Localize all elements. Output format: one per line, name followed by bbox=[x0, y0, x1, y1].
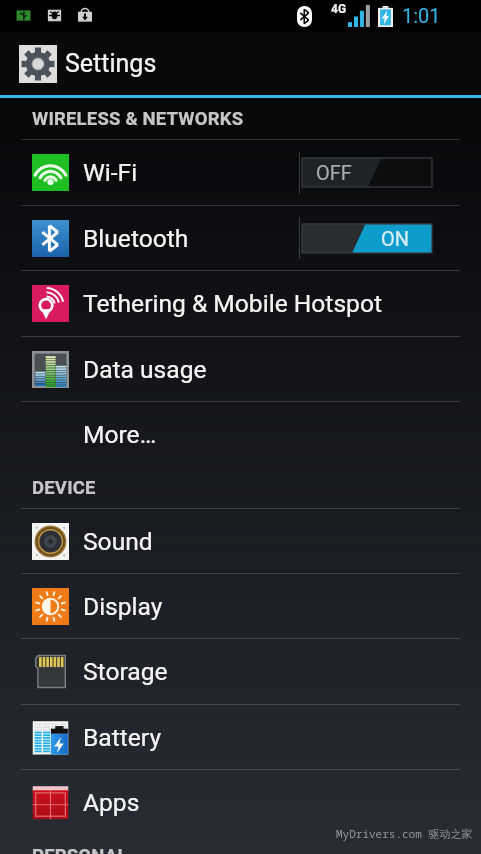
staticText: Settings bbox=[65, 49, 157, 78]
staticText: OFF bbox=[316, 161, 352, 184]
staticText: 4G bbox=[331, 2, 347, 16]
staticText: PERSONAL bbox=[32, 845, 128, 854]
staticText: Battery bbox=[83, 723, 162, 752]
button[interactable]: More… bbox=[0, 402, 481, 467]
button[interactable]: Wi-Fi bbox=[0, 140, 481, 205]
staticText: Tethering & Mobile Hotspot bbox=[83, 289, 382, 318]
button[interactable]: Storage bbox=[0, 639, 481, 704]
staticText: DEVICE bbox=[32, 477, 96, 499]
button[interactable]: Tethering & Mobile Hotspot bbox=[0, 271, 481, 336]
button[interactable]: Switch off bbox=[302, 158, 432, 187]
button[interactable]: Data usage bbox=[0, 337, 481, 401]
other: Settings bbox=[19, 45, 57, 83]
button[interactable]: Apps bbox=[0, 770, 481, 835]
button[interactable]: Sound bbox=[0, 509, 481, 573]
staticText: Wi-Fi bbox=[83, 158, 138, 187]
staticText: Display bbox=[83, 592, 163, 621]
staticText: Bluetooth bbox=[83, 224, 189, 253]
button[interactable]: Bluetooth bbox=[0, 206, 481, 270]
staticText: Storage bbox=[83, 657, 168, 686]
button[interactable]: Battery bbox=[0, 705, 481, 769]
staticText: MyDrivers.com 驱动之家 bbox=[336, 826, 473, 841]
button[interactable]: Switch on bbox=[302, 224, 432, 253]
staticText: WIRELESS & NETWORKS bbox=[32, 108, 244, 130]
button[interactable]: Settings bbox=[0, 32, 481, 95]
staticText: 1:01 bbox=[402, 4, 441, 27]
staticText: Apps bbox=[83, 788, 140, 817]
button[interactable]: Display bbox=[0, 574, 481, 638]
staticText: ON bbox=[381, 227, 410, 250]
staticText: Data usage bbox=[83, 355, 207, 384]
staticText: Sound bbox=[83, 527, 153, 556]
staticText: More… bbox=[83, 420, 157, 449]
